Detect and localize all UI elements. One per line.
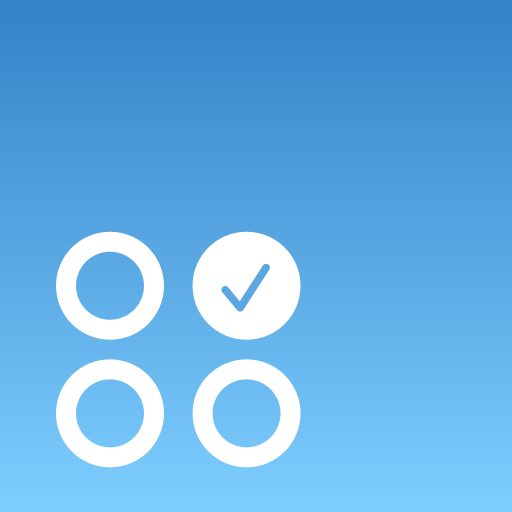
button[interactable]: Option 4, not selected [193,359,301,467]
button[interactable]: Option 3, not selected [56,359,164,467]
button[interactable]: Option 1, not selected [56,232,164,340]
button[interactable]: Option 2, selected [193,232,301,340]
